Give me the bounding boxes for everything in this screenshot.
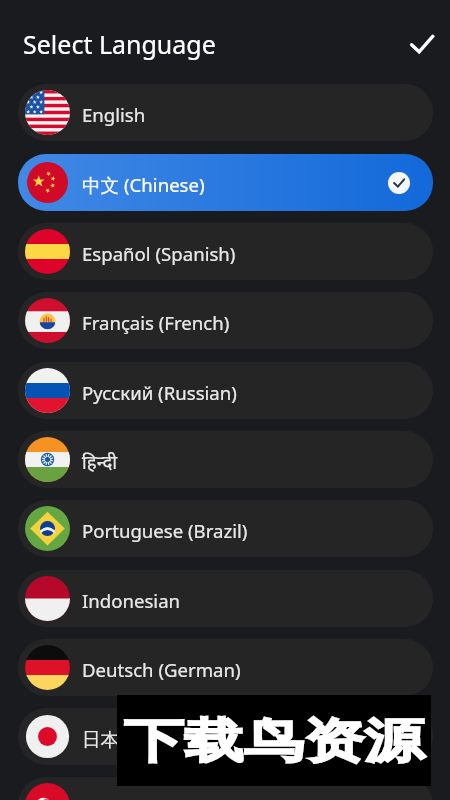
button[interactable]: हिन्दी (18, 431, 433, 488)
button[interactable]: 日本語 (Japanese) (18, 708, 433, 765)
staticText: हिन्दी (82, 449, 118, 474)
button[interactable]: Türkçe (Turkish) (18, 777, 433, 800)
button[interactable]: Confirm language selection (400, 22, 444, 66)
button[interactable]: English (18, 84, 433, 141)
staticText: English (82, 102, 146, 127)
staticText: Indonesian (82, 588, 181, 613)
button[interactable]: Русский (Russian) (18, 362, 433, 419)
staticText: Portuguese (Brazil) (82, 518, 248, 543)
button[interactable]: Deutsch (German) (18, 639, 433, 696)
staticText: Select Language (23, 27, 216, 61)
staticText: 日本語 (Japanese) (82, 726, 233, 751)
staticText: 下载鸟资源 (124, 711, 424, 771)
button[interactable]: Español (Spanish) (18, 223, 433, 280)
staticText: Deutsch (German) (82, 657, 241, 682)
button[interactable]: Portuguese (Brazil) (18, 500, 433, 557)
staticText: Français (French) (82, 310, 230, 335)
button[interactable]: Indonesian (18, 570, 433, 627)
button[interactable]: Français (French) (18, 292, 433, 349)
staticText: Русский (Russian) (82, 380, 237, 405)
staticText: 中文 (Chinese) (82, 172, 205, 197)
staticText: Español (Spanish) (82, 241, 236, 266)
button[interactable]: 中文 (Chinese) (18, 154, 433, 211)
